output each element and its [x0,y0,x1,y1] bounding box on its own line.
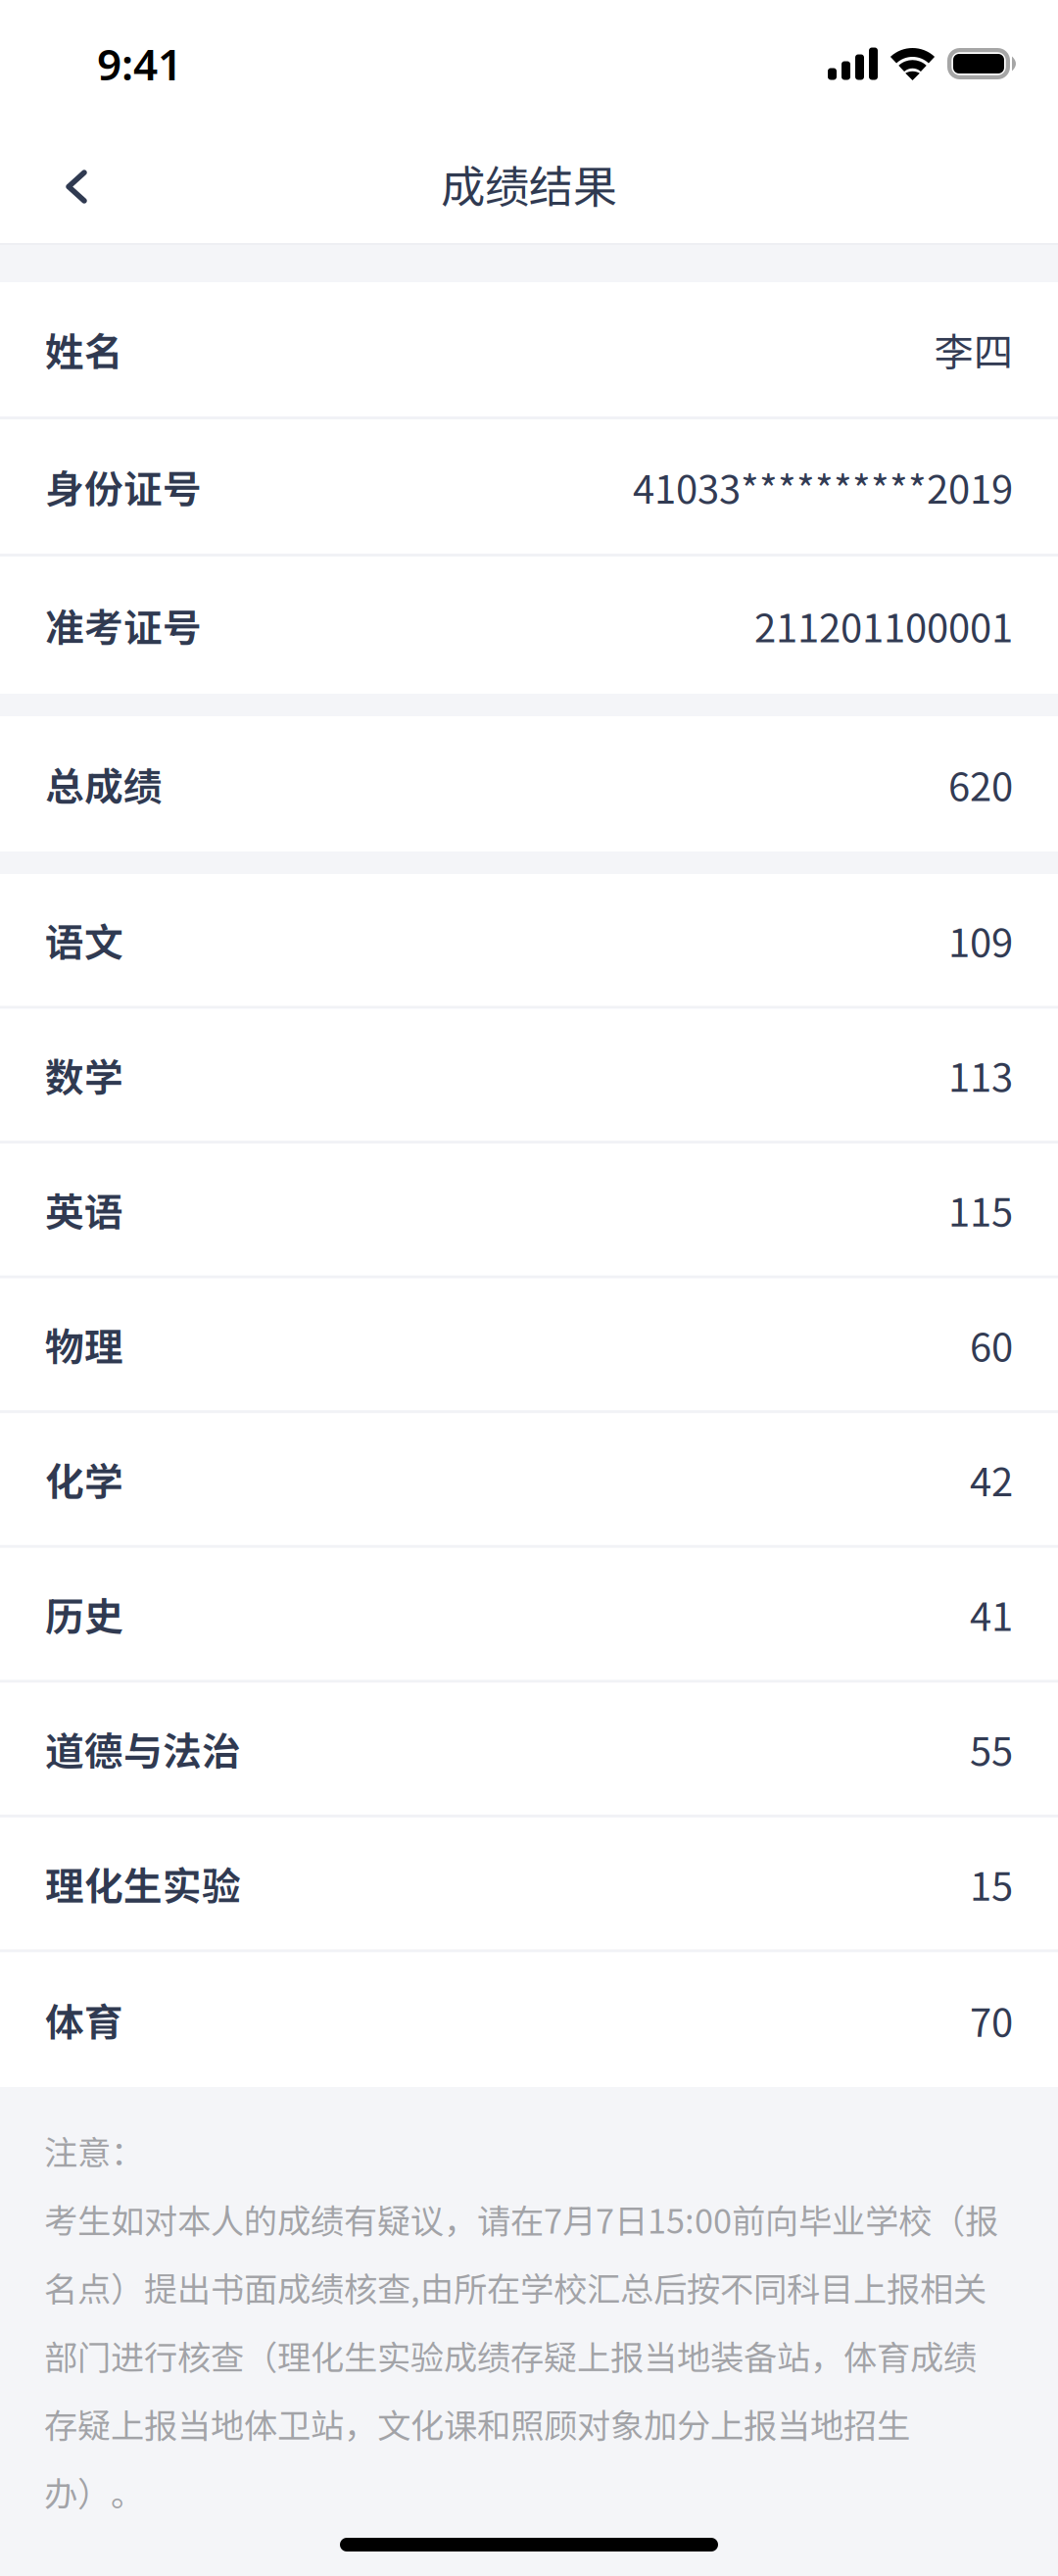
staticText: 道德与法治 [45,1721,241,1777]
staticText: 准考证号 [45,597,202,653]
staticText: 211201100001 [754,597,1013,653]
staticText: 41 [970,1585,1013,1642]
staticText: 英语 [45,1181,123,1238]
staticText: 理化生实验 [45,1855,241,1912]
staticText: 总成绩 [45,756,163,812]
staticText: 化学 [45,1451,123,1507]
staticText: 41033**********2019 [633,458,1013,515]
staticText: 数学 [45,1047,123,1103]
staticText: 物理 [45,1316,123,1372]
staticText: 42 [970,1451,1013,1507]
staticText: 成绩结果 [441,152,617,216]
staticText: 体育 [45,1992,123,2048]
staticText: 115 [948,1181,1013,1238]
staticText: 55 [970,1720,1013,1777]
staticText: 620 [948,755,1013,812]
staticText: 考生如对本人的成绩有疑议，请在7月7日15:00前向毕业学校（报名点）提出书面成… [44,2195,998,2516]
staticText: 113 [948,1046,1013,1103]
staticText: 60 [970,1316,1013,1373]
staticText: 语文 [45,912,123,968]
button[interactable]: 返回 [29,129,123,239]
staticText: 历史 [45,1586,123,1642]
staticText: 109 [948,912,1013,968]
staticText: 9:41 [97,35,182,92]
staticText: 注意： [44,2126,144,2175]
staticText: 15 [970,1855,1013,1912]
staticText: 70 [970,1991,1013,2048]
staticText: 姓名 [45,321,123,377]
staticText: 李四 [935,321,1013,378]
staticText: 身份证号 [45,458,202,515]
